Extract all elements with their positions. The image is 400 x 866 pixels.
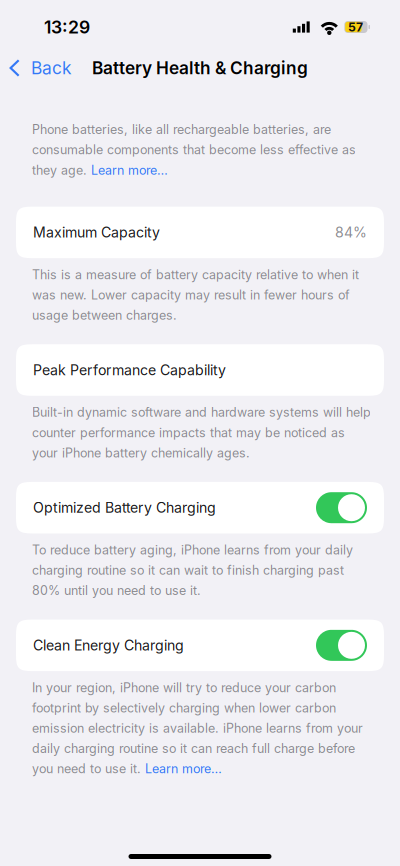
staticText: Phone batteries, like all rechargeable b…: [32, 122, 356, 178]
staticText: In your region, iPhone will try to reduc…: [32, 680, 363, 776]
staticText: To reduce battery aging, iPhone learns f…: [32, 542, 353, 598]
button[interactable]: Clean Energy Charging: [0, 620, 400, 671]
button[interactable]: Peak Performance Capability: [0, 344, 400, 396]
staticText: 13:29: [44, 16, 90, 38]
staticText: 57: [348, 20, 363, 34]
staticText: Built-in dynamic software and hardware s…: [32, 405, 371, 460]
staticText: 84%: [335, 224, 367, 241]
staticText: Peak Performance Capability: [33, 361, 226, 379]
staticText: Clean Energy Charging: [33, 637, 184, 654]
staticText: Maximum Capacity: [33, 224, 160, 241]
staticText: Optimized Battery Charging: [33, 499, 216, 516]
button[interactable]: Maximum Capacity: [0, 207, 400, 258]
button[interactable]: Back: [0, 49, 82, 86]
button[interactable]: Optimized Battery Charging: [0, 482, 400, 533]
staticText: This is a measure of battery capacity re…: [32, 267, 359, 323]
staticText: Back: [31, 57, 72, 78]
staticText: Battery Health & Charging: [92, 58, 308, 78]
